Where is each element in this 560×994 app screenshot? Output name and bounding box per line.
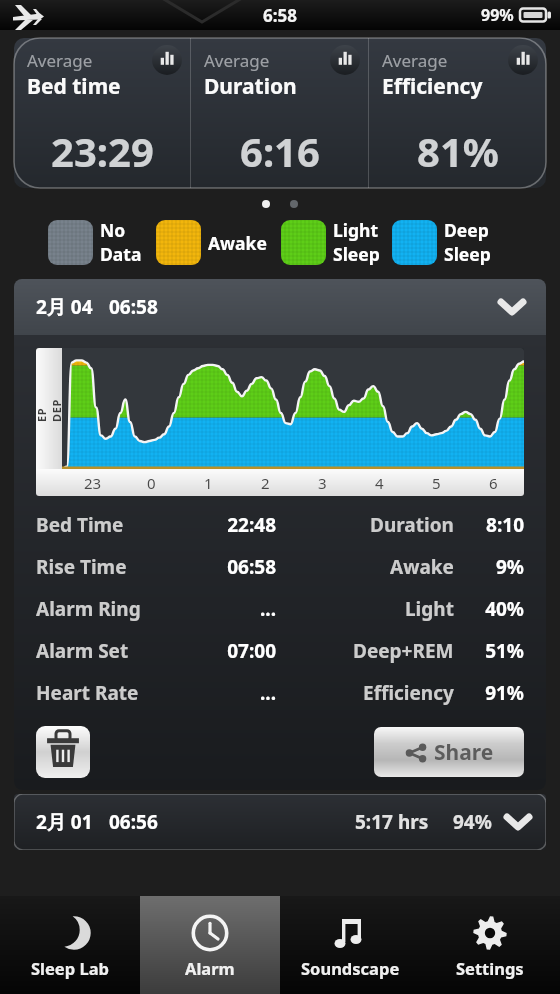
staticText: Deep — [444, 218, 489, 242]
staticText: Data — [100, 242, 142, 266]
staticText: Light — [333, 218, 379, 242]
staticText: Alarm Set — [36, 638, 166, 664]
staticText: 3 — [318, 473, 327, 493]
button[interactable]: Average — [191, 38, 368, 188]
staticText: Bed Time — [36, 512, 166, 538]
staticText: Duration — [204, 72, 297, 101]
staticText: ... — [166, 596, 276, 622]
staticText: ... — [166, 680, 276, 706]
staticText: Awake — [390, 554, 454, 580]
staticText: 51% — [466, 638, 524, 664]
staticText: 6:58 — [263, 4, 297, 27]
button[interactable]: Average — [369, 38, 546, 188]
staticText: 2月 04 — [36, 294, 93, 320]
staticText: SLEEP DEPTH — [36, 396, 79, 422]
button[interactable]: Alarm Ring — [36, 588, 524, 630]
button[interactable]: No — [48, 218, 142, 266]
staticText: 5:17 hrs — [355, 809, 429, 835]
button[interactable]: Sleep Lab — [0, 896, 140, 994]
button[interactable]: 2月 04 — [14, 279, 546, 335]
staticText: Bed time — [27, 72, 121, 101]
staticText: 6 — [489, 473, 498, 493]
staticText: 4 — [375, 473, 384, 493]
staticText: 91% — [466, 680, 524, 706]
button[interactable]: Statistics — [508, 45, 538, 75]
staticText: 23 — [84, 473, 102, 493]
staticText: 81% — [417, 124, 499, 178]
staticText: 1 — [204, 473, 213, 493]
staticText: Efficiency — [363, 680, 454, 706]
staticText: Efficiency — [382, 72, 483, 101]
staticText: No — [100, 218, 126, 242]
button[interactable]: 2月 01 — [14, 794, 546, 850]
staticText: 06:56 — [109, 809, 158, 835]
button[interactable]: Alarm — [140, 896, 280, 994]
staticText: Settings — [456, 957, 524, 979]
staticText: 94% — [453, 809, 492, 835]
staticText: 6:16 — [240, 124, 320, 178]
button[interactable]: Alarm Set — [36, 630, 524, 672]
button[interactable]: Soundscape — [280, 896, 420, 994]
staticText: 9% — [466, 554, 524, 580]
staticText: Awake — [208, 231, 267, 255]
button[interactable]: Rise Time — [36, 546, 524, 588]
button[interactable]: Settings — [420, 896, 560, 994]
staticText: Heart Rate — [36, 680, 166, 706]
staticText: 06:58 — [166, 554, 276, 580]
staticText: Sleep — [333, 242, 380, 266]
staticText: 2月 01 — [36, 809, 93, 835]
button[interactable]: Statistics — [152, 45, 182, 75]
other: Collapse — [504, 814, 532, 831]
staticText: 06:58 — [109, 294, 158, 320]
button[interactable]: Share — [374, 727, 524, 777]
button[interactable]: Delete — [36, 726, 90, 778]
staticText: Alarm Ring — [36, 596, 166, 622]
staticText: 40% — [466, 596, 524, 622]
staticText: Rise Time — [36, 554, 166, 580]
staticText: Duration — [370, 512, 454, 538]
staticText: 8:10 — [466, 512, 524, 538]
button[interactable]: Average — [14, 38, 190, 188]
staticText: 0 — [147, 473, 156, 493]
staticText: Deep+REM — [353, 638, 454, 664]
button[interactable]: Heart Rate — [36, 672, 524, 714]
staticText: Soundscape — [301, 957, 400, 979]
staticText: 2 — [261, 473, 270, 493]
staticText: Share — [434, 738, 494, 767]
staticText: Average — [204, 49, 270, 72]
staticText: Sleep — [444, 242, 491, 266]
staticText: 5 — [432, 473, 441, 493]
staticText: 07:00 — [166, 638, 276, 664]
other: Collapse — [498, 299, 526, 316]
staticText: Average — [27, 49, 93, 72]
button[interactable]: Bed Time — [36, 504, 524, 546]
button[interactable]: Deep — [392, 218, 491, 266]
staticText: Alarm — [185, 957, 235, 979]
staticText: 23:29 — [51, 124, 154, 178]
staticText: 22:48 — [166, 512, 276, 538]
button[interactable]: Light — [281, 218, 380, 266]
button[interactable]: Awake — [156, 220, 267, 265]
staticText: Sleep Lab — [31, 957, 109, 979]
staticText: 99% — [481, 4, 514, 26]
staticText: Light — [405, 596, 454, 622]
staticText: Average — [382, 49, 448, 72]
button[interactable]: Statistics — [330, 45, 360, 75]
